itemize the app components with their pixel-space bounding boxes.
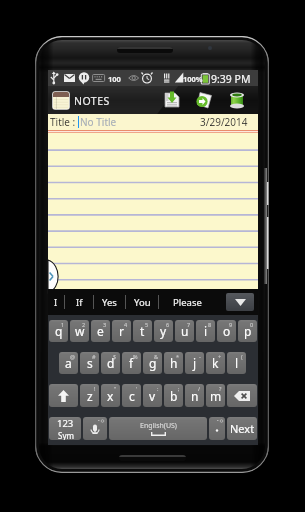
staticText: &: [154, 353, 159, 360]
button[interactable]: x: [101, 384, 120, 407]
staticText: 8: [208, 321, 212, 328]
staticText: 123: [57, 417, 74, 430]
button[interactable]: a: [59, 352, 78, 374]
staticText: Title :: [50, 115, 78, 129]
button[interactable]: New note: [194, 90, 213, 109]
button[interactable]: Next: [227, 417, 257, 440]
button[interactable]: q: [49, 320, 68, 342]
staticText: +: [218, 353, 222, 360]
button[interactable]: r: [112, 320, 131, 342]
staticText: 0: [250, 321, 254, 328]
button[interactable]: b: [164, 384, 183, 407]
staticText: 5: [145, 321, 149, 328]
staticText: 9:39 PM: [211, 72, 251, 86]
button[interactable]: Save: [162, 90, 181, 109]
button[interactable]: e: [91, 320, 110, 342]
button[interactable]: Space: [109, 417, 207, 440]
staticText: 2: [82, 321, 86, 328]
button[interactable]: o: [217, 320, 236, 342]
staticText: You: [134, 296, 151, 309]
button[interactable]: You: [126, 289, 158, 315]
staticText: 4: [124, 321, 128, 328]
button[interactable]: l: [227, 352, 246, 374]
button[interactable]: v: [143, 384, 162, 407]
button[interactable]: I: [48, 289, 64, 315]
staticText: b: [170, 388, 178, 404]
staticText: -: [199, 353, 201, 360]
staticText: u: [181, 323, 189, 339]
staticText: 100: [108, 74, 121, 84]
button[interactable]: Period: [209, 417, 225, 440]
staticText: #: [92, 353, 96, 360]
staticText: NOTES: [74, 94, 110, 108]
staticText: 3/29/2014: [200, 115, 248, 129]
button[interactable]: y: [154, 320, 173, 342]
staticText: %: [133, 353, 138, 360]
staticText: $: [113, 353, 117, 360]
button[interactable]: i: [196, 320, 215, 342]
button[interactable]: m: [206, 384, 225, 407]
button[interactable]: Expand suggestions: [226, 293, 254, 311]
staticText: @: [70, 353, 75, 360]
staticText: Please: [173, 296, 202, 309]
staticText: c: [129, 388, 135, 404]
button[interactable]: s: [80, 352, 99, 374]
staticText: 6: [166, 321, 170, 328]
staticText: x: [107, 388, 114, 404]
staticText: h: [170, 355, 178, 371]
staticText: 3: [103, 321, 107, 328]
button[interactable]: u: [175, 320, 194, 342]
button[interactable]: Backspace: [227, 384, 257, 407]
staticText: n: [191, 388, 199, 404]
staticText: g: [149, 355, 157, 371]
staticText: d: [107, 355, 115, 371]
staticText: If: [76, 296, 83, 309]
staticText: ": [114, 385, 117, 392]
staticText: ;: [178, 385, 180, 392]
staticText: p: [244, 323, 252, 339]
staticText: 100%: [183, 74, 203, 84]
staticText: m: [210, 388, 222, 404]
button[interactable]: k: [206, 352, 225, 374]
button[interactable]: j: [185, 352, 204, 374]
staticText: ?: [219, 385, 222, 392]
staticText: !: [94, 385, 96, 392]
button[interactable]: p: [238, 320, 257, 342]
staticText: Next: [230, 421, 255, 436]
staticText: q: [55, 323, 63, 339]
staticText: I: [54, 296, 58, 309]
button[interactable]: t: [133, 320, 152, 342]
button[interactable]: Voice input: [83, 417, 107, 440]
button[interactable]: Shift: [49, 384, 78, 407]
staticText: *: [176, 353, 180, 360]
button[interactable]: Please: [159, 289, 216, 315]
staticText: :: [157, 385, 159, 392]
button[interactable]: f: [122, 352, 141, 374]
button[interactable]: Yes: [94, 289, 125, 315]
button[interactable]: If: [65, 289, 93, 315]
staticText: Sym: [58, 430, 74, 440]
button[interactable]: c: [122, 384, 141, 407]
button[interactable]: Symbols: [49, 417, 81, 440]
staticText: r: [119, 323, 124, 339]
button[interactable]: Notes app: [52, 91, 71, 110]
button[interactable]: z: [80, 384, 99, 407]
staticText: k: [212, 355, 219, 371]
staticText: t: [140, 323, 145, 339]
staticText: English(US): [140, 421, 177, 431]
button[interactable]: w: [70, 320, 89, 342]
button[interactable]: h: [164, 352, 183, 374]
staticText: 7: [187, 321, 191, 328]
staticText: /: [198, 385, 201, 392]
staticText: s: [87, 355, 93, 371]
button[interactable]: Delete: [227, 90, 246, 109]
button[interactable]: n: [185, 384, 204, 407]
staticText: i: [204, 323, 208, 339]
button[interactable]: d: [101, 352, 120, 374]
staticText: No Title: [80, 115, 117, 129]
staticText: e: [97, 323, 104, 339]
staticText: Yes: [102, 296, 117, 309]
staticText: 9: [229, 321, 233, 328]
staticText: l: [235, 355, 239, 371]
button[interactable]: g: [143, 352, 162, 374]
